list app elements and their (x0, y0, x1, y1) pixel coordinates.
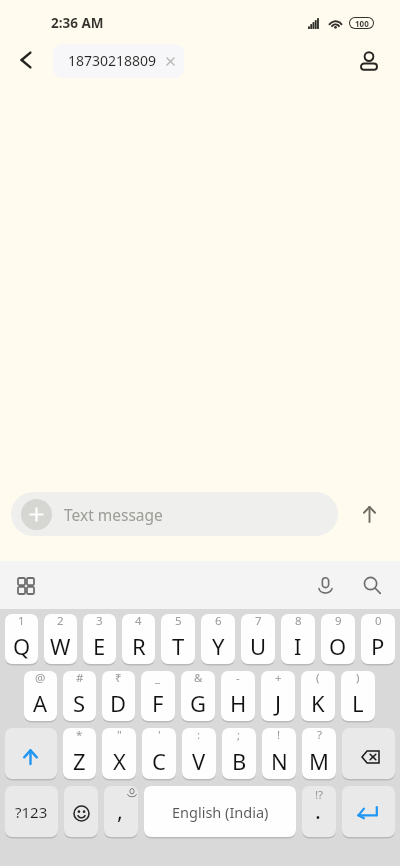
staticText: * (76, 728, 83, 743)
button[interactable]: ₹ (102, 671, 135, 721)
staticText: 6 (215, 614, 222, 629)
staticText: ₹ (115, 671, 122, 686)
staticText: A (33, 688, 48, 718)
staticText: : (197, 728, 201, 743)
staticText: ) (356, 671, 360, 686)
button[interactable]: _ (141, 671, 175, 721)
staticText: Z (73, 746, 86, 776)
staticText: T (172, 631, 185, 661)
staticText: 5 (175, 614, 182, 629)
staticText: + (275, 671, 282, 686)
button[interactable]: ) (341, 671, 375, 721)
button[interactable]: " (102, 728, 136, 779)
staticText: 8 (295, 614, 302, 629)
button[interactable]: Backspace (342, 728, 395, 779)
button[interactable]: 2 (44, 614, 77, 664)
staticText: - (236, 671, 240, 686)
button[interactable]: 7 (241, 614, 275, 664)
staticText: Y (212, 631, 225, 661)
button[interactable]: Shift (5, 728, 57, 779)
staticText: English (India) (172, 802, 269, 822)
staticText: U (250, 631, 267, 661)
button[interactable]: - (221, 671, 255, 721)
button[interactable]: 1 (5, 614, 38, 664)
staticText: J (275, 688, 282, 718)
button[interactable]: Keyboard options (8, 567, 44, 603)
button[interactable]: ; (222, 728, 256, 779)
other: Attach (21, 499, 52, 530)
button[interactable]: Attach (11, 492, 338, 536)
staticText: 3 (96, 614, 103, 629)
button[interactable]: 8 (281, 614, 315, 664)
staticText: , (117, 795, 123, 825)
staticText: 2:36 AM (51, 14, 104, 32)
staticText: S (73, 688, 86, 718)
button[interactable]: Symbols (5, 786, 58, 837)
button[interactable]: 6 (201, 614, 235, 664)
staticText: 1 (18, 614, 25, 629)
staticText: ' (158, 728, 161, 743)
staticText: G (190, 688, 207, 718)
button[interactable]: : (182, 728, 216, 779)
staticText: P (371, 631, 385, 661)
button[interactable]: Enter (342, 786, 395, 837)
staticText: H (230, 688, 247, 718)
button[interactable]: 0 (361, 614, 395, 664)
staticText: E (93, 631, 106, 661)
button[interactable]: ! (262, 728, 296, 779)
staticText: O (329, 631, 347, 661)
button[interactable]: 18730218809 (53, 44, 184, 78)
staticText: Q (13, 631, 31, 661)
staticText: # (76, 671, 84, 686)
button[interactable]: Back (8, 44, 44, 80)
button[interactable]: @ (24, 671, 57, 721)
button[interactable]: Send (347, 492, 391, 536)
button[interactable]: ? (302, 728, 336, 779)
staticText: 9 (335, 614, 342, 629)
button[interactable]: # (63, 671, 96, 721)
staticText: !? (315, 787, 324, 803)
button[interactable]: ( (301, 671, 335, 721)
staticText: F (152, 688, 164, 718)
staticText: I (294, 631, 302, 661)
button[interactable]: ' (142, 728, 176, 779)
staticText: R (132, 631, 146, 661)
staticText: ?123 (15, 802, 48, 822)
staticText: 0 (375, 614, 382, 629)
button[interactable]: & (181, 671, 215, 721)
staticText: D (110, 688, 127, 718)
button[interactable]: 5 (161, 614, 195, 664)
staticText: X (113, 746, 126, 776)
button[interactable]: Space (144, 786, 296, 837)
staticText: 4 (135, 614, 142, 629)
staticText: _ (155, 671, 161, 686)
staticText: L (352, 688, 364, 718)
button[interactable]: , (104, 786, 138, 837)
staticText: C (152, 746, 166, 776)
staticText: ; (237, 728, 241, 743)
staticText: ( (316, 671, 320, 686)
button[interactable]: Search (352, 565, 392, 605)
button[interactable]: Emoji (64, 786, 98, 837)
button[interactable]: 9 (321, 614, 355, 664)
staticText: 7 (255, 614, 262, 629)
staticText: W (50, 631, 71, 661)
staticText: N (271, 746, 288, 776)
staticText: B (232, 746, 247, 776)
button[interactable]: Voice input (305, 565, 345, 605)
staticText: " (117, 728, 122, 743)
staticText: 100 (355, 18, 369, 28)
button[interactable]: 4 (122, 614, 155, 664)
staticText: ! (277, 728, 281, 743)
button[interactable]: . (302, 786, 336, 837)
button[interactable]: * (63, 728, 96, 779)
staticText: . (315, 795, 321, 825)
staticText: V (192, 746, 206, 776)
staticText: Text message (64, 504, 163, 525)
button[interactable]: 3 (83, 614, 116, 664)
button[interactable]: + (261, 671, 295, 721)
staticText: M (309, 746, 329, 776)
staticText: & (194, 671, 203, 686)
staticText: 2 (57, 614, 64, 629)
button[interactable]: Contact details (350, 43, 388, 81)
